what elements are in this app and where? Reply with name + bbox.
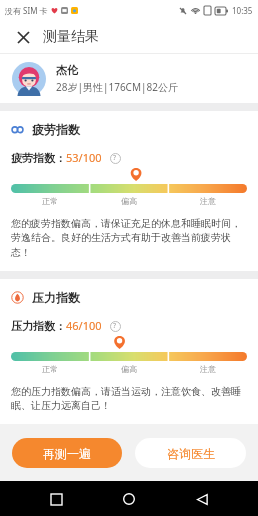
staticText: 正常 xyxy=(42,364,58,374)
button[interactable]: Help xyxy=(108,319,122,333)
staticText: 没有 SIM 卡 xyxy=(5,5,48,16)
staticText: 杰伦 xyxy=(56,63,78,77)
staticText: 疲劳指数： xyxy=(11,151,66,165)
staticText: 再测一遍 xyxy=(43,446,91,461)
staticText: 咨询医生 xyxy=(167,446,215,461)
staticText: 压力指数 xyxy=(32,290,80,305)
staticText: 压力指数： xyxy=(11,319,66,333)
staticText: 您的疲劳指数偏高，请保证充足的休息和睡眠时间，劳逸结合。良好的生活方式有助于改善… xyxy=(11,217,247,259)
button[interactable]: Help xyxy=(108,151,122,165)
button[interactable]: Recents xyxy=(39,482,73,516)
button[interactable]: Back xyxy=(185,482,219,516)
staticText: 53/100 xyxy=(66,150,102,165)
staticText: 46/100 xyxy=(66,318,102,333)
staticText: 注意 xyxy=(200,364,216,374)
button[interactable]: Home xyxy=(112,482,146,516)
staticText: 注意 xyxy=(200,196,216,206)
button[interactable]: 再测一遍 xyxy=(12,438,122,468)
staticText: 偏高 xyxy=(121,364,137,374)
staticText: 正常 xyxy=(42,196,58,206)
staticText: 28岁|男性|176CM|82公斤 xyxy=(56,80,178,94)
button[interactable]: 杰伦 xyxy=(0,54,258,103)
button[interactable]: 咨询医生 xyxy=(135,438,246,468)
staticText: 您的压力指数偏高，请适当运动，注意饮食、改善睡眠、让压力远离自己！ xyxy=(11,385,247,412)
staticText: ? xyxy=(113,153,117,163)
staticText: 10:35 xyxy=(232,5,253,16)
button[interactable]: Close xyxy=(12,26,34,48)
staticText: 偏高 xyxy=(121,196,137,206)
staticText: 疲劳指数 xyxy=(32,122,80,137)
staticText: 测量结果 xyxy=(43,28,99,46)
staticText: ? xyxy=(113,321,117,331)
